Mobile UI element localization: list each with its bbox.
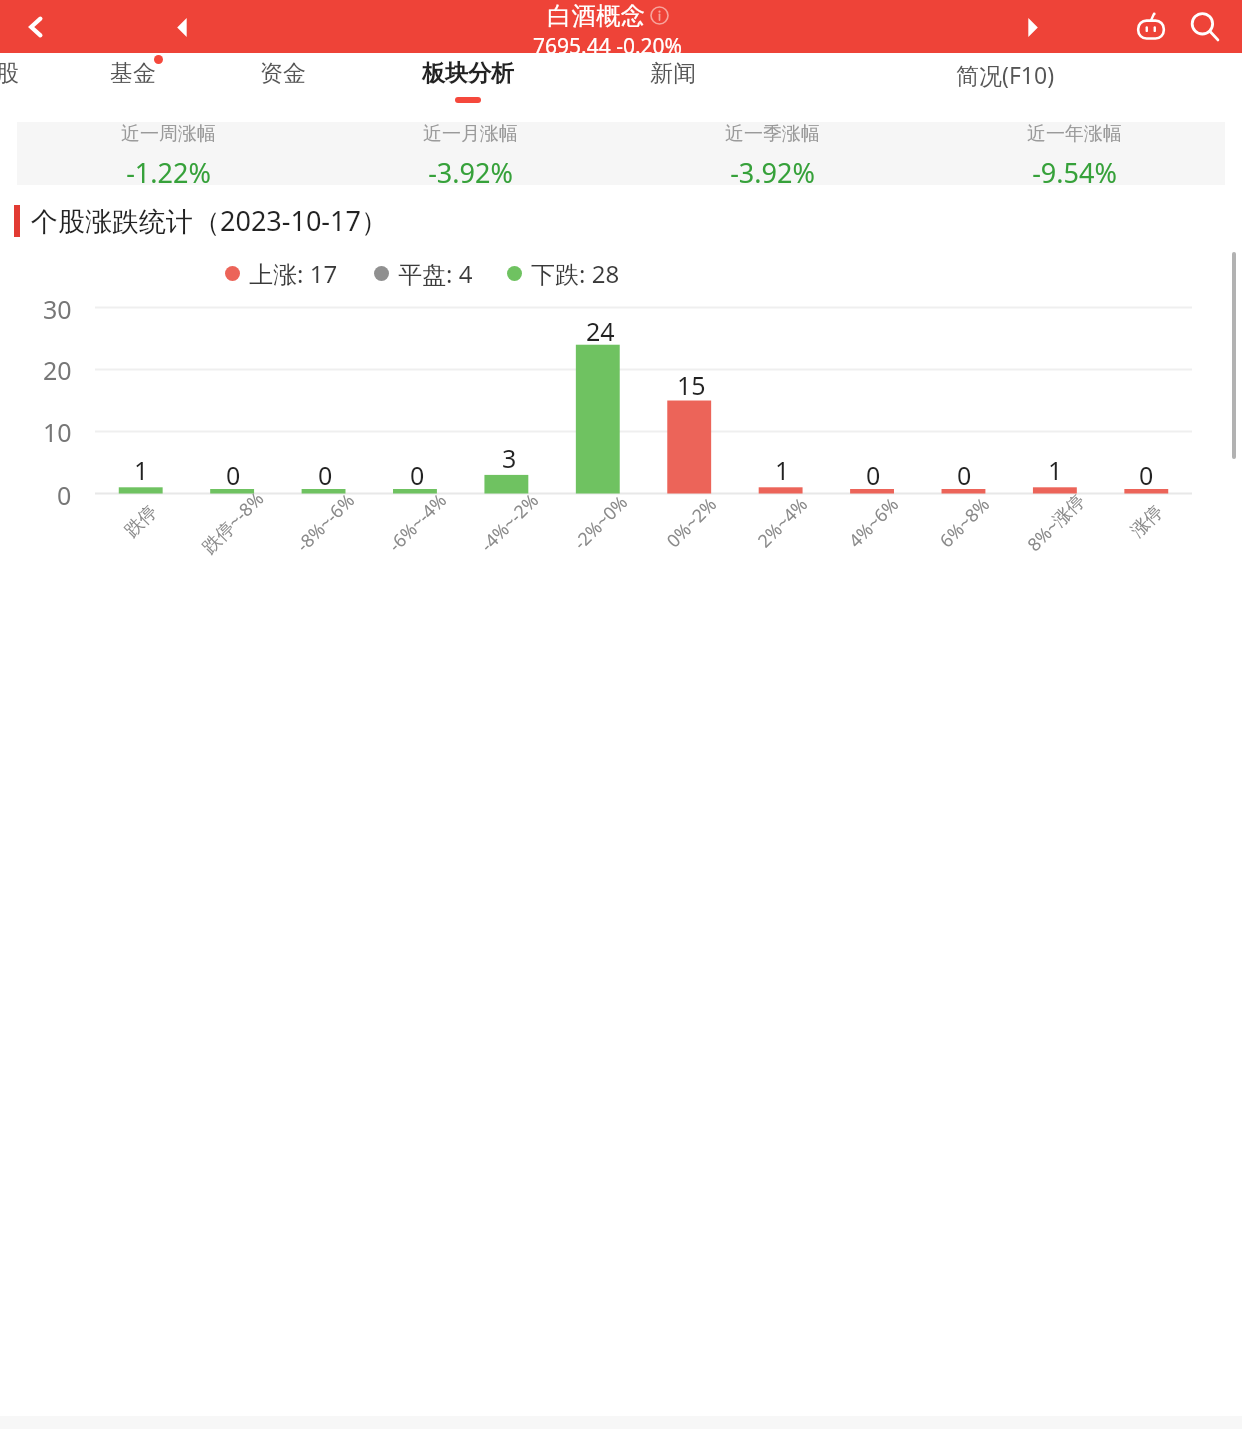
button[interactable]: Previous sector bbox=[160, 5, 204, 49]
staticText: -8%~-6% bbox=[291, 488, 360, 557]
staticText: 0 bbox=[957, 458, 972, 492]
staticText: 近一月涨幅 bbox=[423, 122, 518, 146]
staticText: 近一周涨幅 bbox=[121, 122, 216, 146]
button[interactable]: 近一年涨幅 bbox=[923, 122, 1225, 185]
staticText: 简况(F10) bbox=[956, 59, 1055, 90]
staticText: 6%~8% bbox=[934, 492, 995, 553]
staticText: 4%~6% bbox=[843, 492, 904, 553]
staticText: 24 bbox=[586, 314, 615, 348]
staticText: -1.22% bbox=[126, 154, 211, 185]
staticText: -9.54% bbox=[1032, 154, 1117, 185]
staticText: 20 bbox=[43, 353, 72, 387]
staticText: -2%~0% bbox=[568, 490, 633, 555]
staticText: -4%~-2% bbox=[475, 488, 544, 557]
staticText: 1 bbox=[1048, 453, 1063, 487]
staticText: 0 bbox=[226, 458, 241, 492]
staticText: 2%~4% bbox=[752, 492, 813, 553]
staticText: 个股涨跌统计（2023-10-17） bbox=[31, 202, 388, 239]
staticText: 近一年涨幅 bbox=[1027, 122, 1122, 146]
staticText: 0 bbox=[866, 458, 881, 492]
staticText: 0 bbox=[318, 458, 333, 492]
button[interactable]: 平盘: 4 bbox=[374, 257, 473, 290]
button[interactable]: 近一周涨幅 bbox=[17, 122, 319, 185]
button[interactable]: 股 bbox=[0, 53, 36, 111]
button[interactable]: Search bbox=[1182, 4, 1228, 50]
staticText: 资金 bbox=[260, 59, 306, 88]
button[interactable]: 简况(F10) bbox=[768, 53, 1242, 111]
staticText: 10 bbox=[43, 415, 72, 449]
staticText: 0 bbox=[1139, 458, 1154, 492]
staticText: 白酒概念 bbox=[547, 0, 645, 31]
staticText: -3.92% bbox=[730, 154, 815, 185]
staticText: 3 bbox=[502, 441, 517, 475]
button[interactable]: Next sector bbox=[1010, 5, 1054, 49]
button[interactable]: AI assistant bbox=[1128, 4, 1174, 50]
staticText: 近一季涨幅 bbox=[725, 122, 820, 146]
staticText: 15 bbox=[677, 368, 706, 402]
staticText: -3.92% bbox=[428, 154, 513, 185]
button[interactable]: 上涨: 17 bbox=[225, 257, 338, 290]
staticText: 板块分析 bbox=[422, 59, 514, 88]
staticText: 7695.44 -0.20% bbox=[533, 32, 683, 53]
staticText: 基金 bbox=[110, 59, 156, 88]
button[interactable]: 下跌: 28 bbox=[507, 257, 620, 290]
staticText: 上涨: 17 bbox=[249, 257, 338, 290]
staticText: 0 bbox=[57, 478, 72, 512]
button[interactable]: Back bbox=[14, 5, 58, 49]
button[interactable]: 资金 bbox=[208, 53, 358, 111]
staticText: 8%~涨停 bbox=[1022, 488, 1090, 557]
staticText: 下跌: 28 bbox=[531, 257, 620, 290]
staticText: 1 bbox=[134, 453, 149, 487]
staticText: 涨停 bbox=[1126, 501, 1168, 542]
button[interactable]: 板块分析 bbox=[358, 53, 578, 111]
button[interactable]: 基金 bbox=[58, 53, 208, 111]
staticText: 30 bbox=[43, 292, 72, 326]
staticText: 1 bbox=[775, 453, 790, 487]
button[interactable]: 近一季涨幅 bbox=[621, 122, 923, 185]
staticText: 0 bbox=[410, 458, 425, 492]
staticText: 跌停~-8% bbox=[197, 486, 269, 559]
staticText: 平盘: 4 bbox=[398, 257, 473, 290]
staticText: 跌停 bbox=[120, 501, 162, 542]
button[interactable]: 近一月涨幅 bbox=[319, 122, 621, 185]
button[interactable]: 新闻 bbox=[578, 53, 768, 111]
button[interactable]: Info bbox=[650, 6, 669, 25]
staticText: -6%~-4% bbox=[383, 488, 452, 557]
staticText: 0%~2% bbox=[661, 492, 722, 553]
staticText: 股 bbox=[0, 59, 19, 88]
staticText: 新闻 bbox=[650, 59, 696, 88]
